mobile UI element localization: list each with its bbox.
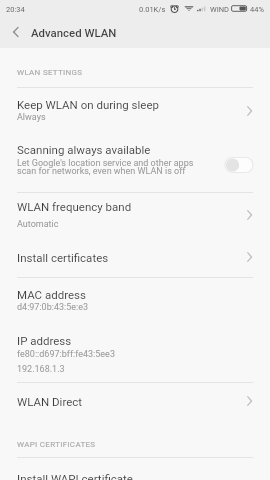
button[interactable] bbox=[0, 277, 270, 382]
button[interactable] bbox=[0, 382, 270, 425]
staticText: 0.01K/s bbox=[139, 5, 166, 14]
button[interactable] bbox=[0, 88, 270, 192]
staticText: Advanced WLAN bbox=[31, 26, 117, 39]
staticText: scan for networks, even when WLAN is off bbox=[17, 166, 186, 177]
button[interactable]: Navigate up bbox=[0, 16, 31, 48]
button[interactable] bbox=[0, 458, 270, 480]
staticText: WIND bbox=[210, 5, 229, 14]
staticText: IP address bbox=[17, 334, 72, 347]
staticText: WLAN SETTINGS bbox=[17, 68, 83, 77]
staticText: MAC address bbox=[17, 288, 86, 301]
staticText: Keep WLAN on during sleep bbox=[17, 98, 159, 111]
staticText: Always bbox=[17, 112, 46, 123]
staticText: Let Google's location service and other … bbox=[17, 158, 194, 169]
staticText: WLAN frequency band bbox=[17, 200, 132, 213]
staticText: Scanning always available bbox=[17, 143, 151, 156]
staticText: WLAN Direct bbox=[17, 395, 83, 408]
staticText: 44% bbox=[250, 5, 264, 14]
staticText: fe80::d697:bff:fe43:5ee3 bbox=[17, 349, 115, 360]
button[interactable] bbox=[0, 192, 270, 277]
staticText: 20:34 bbox=[6, 5, 25, 14]
button[interactable]: Scanning always available toggle bbox=[224, 157, 254, 173]
staticText: WAPI CERTIFICATES bbox=[17, 440, 96, 449]
staticText: d4:97:0b:43:5e:e3 bbox=[17, 302, 89, 313]
staticText: Install WAPI certificate bbox=[17, 472, 133, 480]
staticText: 192.168.1.3 bbox=[17, 364, 65, 375]
staticText: Install certificates bbox=[17, 251, 109, 264]
staticText: Automatic bbox=[17, 219, 59, 230]
